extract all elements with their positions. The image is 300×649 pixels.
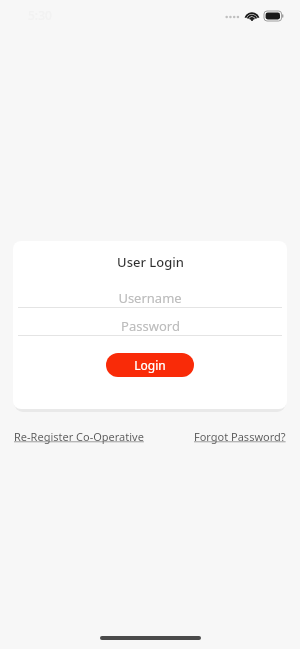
staticText: Re-Register Co-Operative — [14, 429, 144, 444]
staticText: Login — [134, 357, 166, 373]
button[interactable]: Password — [18, 316, 282, 336]
button[interactable]: Login — [106, 353, 194, 377]
staticText: User Login — [117, 253, 184, 271]
button[interactable]: Forgot Password? — [194, 429, 286, 444]
button[interactable]: Username — [18, 288, 282, 308]
staticText: Forgot Password? — [194, 429, 286, 444]
staticText: Username — [118, 289, 182, 307]
staticText: Password — [121, 317, 180, 335]
button[interactable]: Re-Register Co-Operative — [14, 429, 144, 444]
